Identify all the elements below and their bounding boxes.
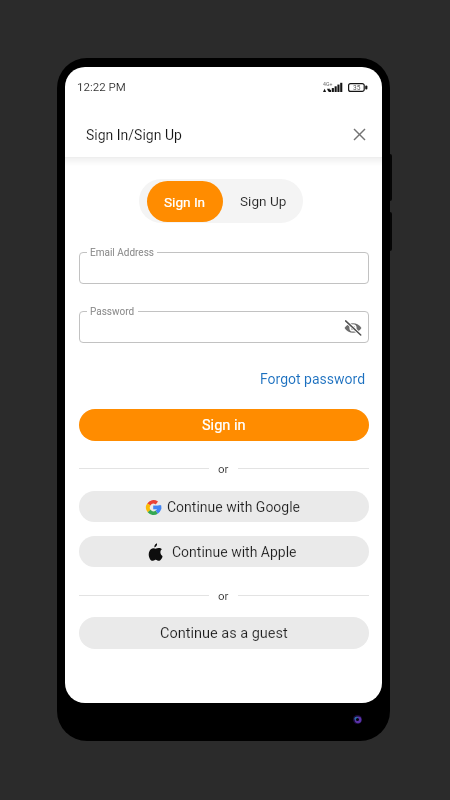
staticText: 4G+ [323, 81, 333, 87]
staticText: 12:22 PM [77, 80, 126, 93]
button[interactable]: Sign Up [223, 179, 303, 223]
staticText: Forgot password [260, 371, 366, 387]
button[interactable]: Show password [343, 317, 363, 337]
staticText: Email Address [90, 247, 154, 259]
button[interactable]: Continue with Apple [79, 536, 369, 567]
staticText: Sign in [202, 417, 246, 434]
staticText: or [218, 589, 229, 602]
staticText: Sign Up [240, 193, 287, 209]
button[interactable]: Continue as a guest [79, 617, 369, 649]
staticText: Continue with Apple [172, 544, 297, 560]
button[interactable]: Sign in [79, 409, 369, 441]
button[interactable]: Forgot password [258, 371, 368, 387]
staticText: Continue as a guest [160, 625, 288, 642]
staticText: 35 [353, 84, 361, 92]
staticText: Continue with Google [167, 499, 301, 515]
staticText: Password [90, 306, 135, 318]
button[interactable]: Close [347, 122, 371, 146]
button[interactable]: Continue with Google [79, 491, 369, 522]
staticText: Sign In [164, 194, 206, 210]
staticText: or [218, 462, 229, 475]
staticText: Sign In/Sign Up [86, 127, 182, 143]
button[interactable]: Sign In [147, 181, 223, 222]
button[interactable] [79, 311, 369, 343]
button[interactable] [79, 252, 369, 284]
